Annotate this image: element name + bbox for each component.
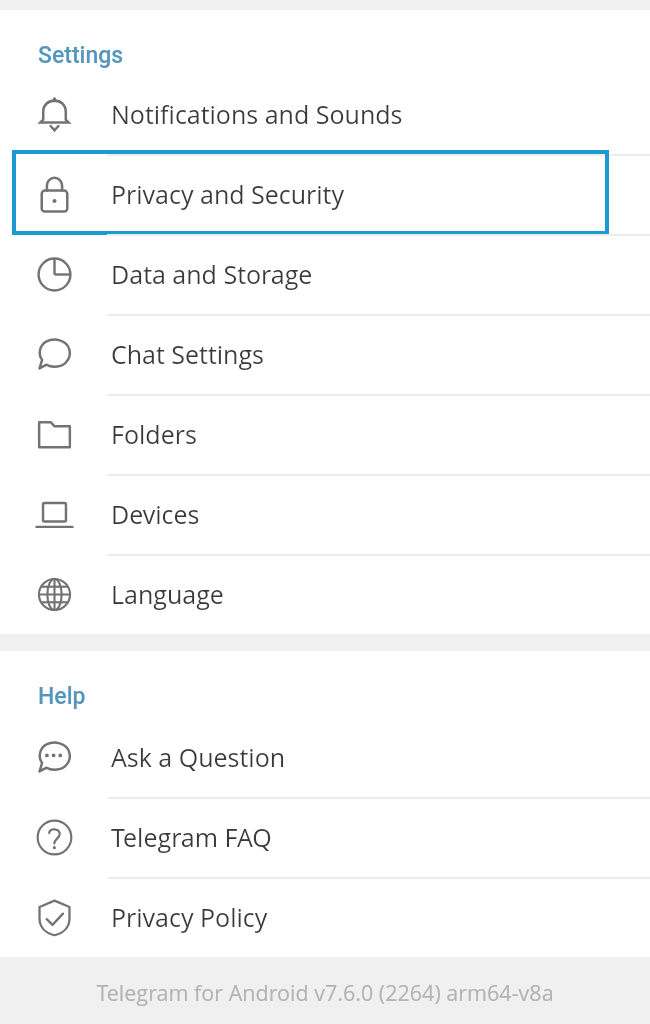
- other: Data and Storage: [36, 256, 73, 293]
- other: Devices: [36, 496, 73, 533]
- staticText: Telegram for Android v7.6.0 (2264) arm64…: [96, 978, 554, 1007]
- staticText: Ask a Question: [111, 740, 286, 774]
- other: Folders: [36, 416, 73, 453]
- staticText: Devices: [111, 497, 200, 531]
- other: Chat Settings: [36, 336, 73, 373]
- staticText: Folders: [111, 417, 197, 451]
- staticText: Privacy and Security: [111, 177, 345, 211]
- staticText: Language: [111, 577, 224, 611]
- other: Notifications and Sounds: [36, 96, 73, 133]
- other: Privacy and Security: [36, 176, 73, 213]
- button[interactable]: Devices: [0, 474, 650, 554]
- staticText: Privacy Policy: [111, 900, 268, 934]
- button[interactable]: Chat Settings: [0, 314, 650, 394]
- other: Telegram FAQ: [36, 819, 73, 856]
- button[interactable]: Language: [0, 554, 650, 634]
- staticText: Telegram FAQ: [111, 820, 272, 854]
- button[interactable]: Privacy Policy: [0, 877, 650, 957]
- button[interactable]: Folders: [0, 394, 650, 474]
- staticText: Help: [38, 683, 86, 710]
- staticText: Notifications and Sounds: [111, 97, 403, 131]
- other: Privacy Policy: [36, 899, 73, 936]
- button[interactable]: Ask a Question: [0, 717, 650, 797]
- button[interactable]: Telegram FAQ: [0, 797, 650, 877]
- button[interactable]: Notifications and Sounds: [0, 74, 650, 154]
- other: Language: [36, 576, 73, 613]
- staticText: Data and Storage: [111, 257, 313, 291]
- other: Ask a Question: [36, 739, 73, 776]
- staticText: Settings: [38, 42, 124, 69]
- staticText: Chat Settings: [111, 337, 265, 371]
- button[interactable]: Privacy and Security: [0, 154, 650, 234]
- button[interactable]: Data and Storage: [0, 234, 650, 314]
